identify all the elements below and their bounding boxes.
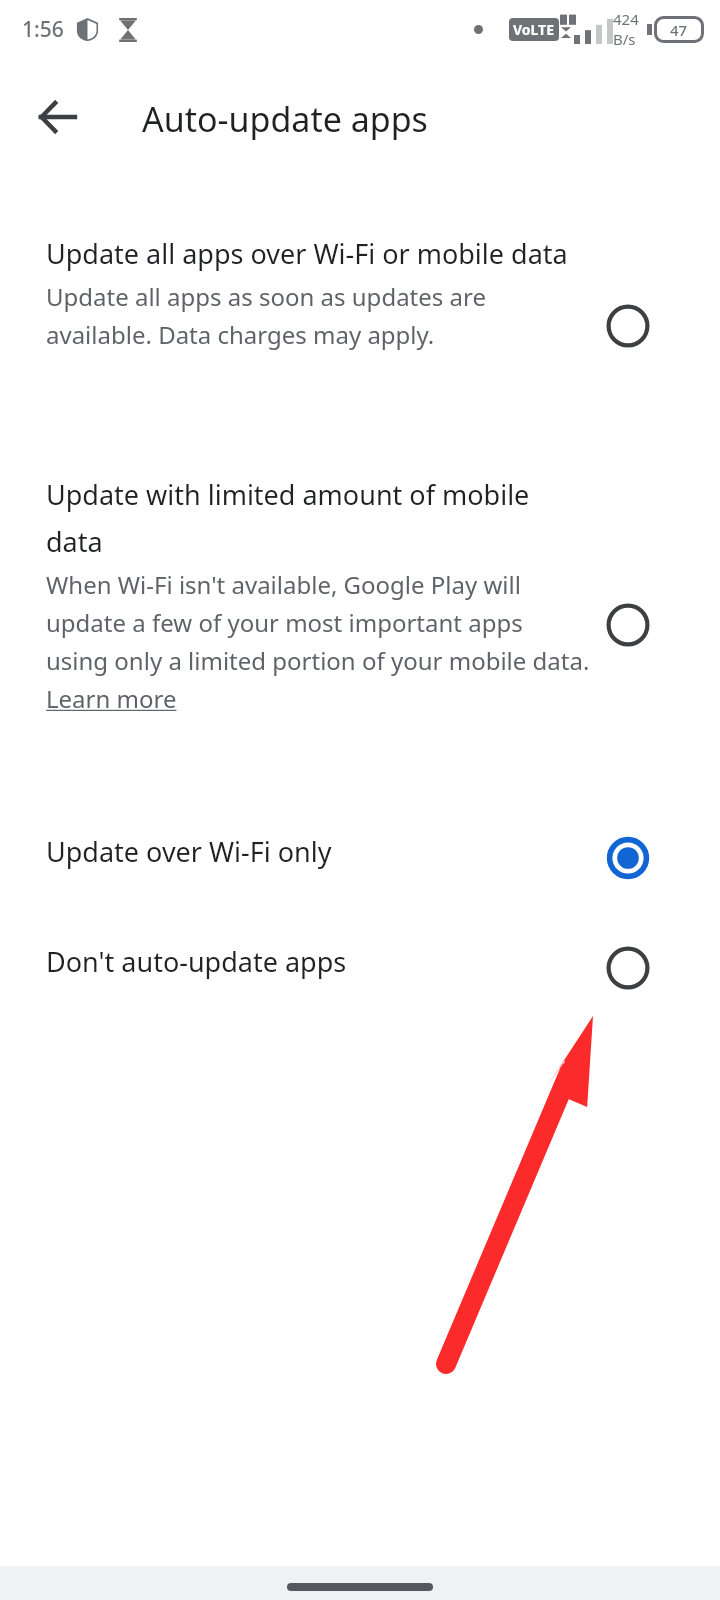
button[interactable]: Update all apps over Wi-Fi or mobile dat…	[598, 296, 658, 356]
button[interactable]	[0, 222, 720, 422]
staticText: 1:56	[22, 15, 64, 44]
staticText: Don't auto-update apps	[46, 943, 347, 980]
button[interactable]: Update with limited amount of mobile dat…	[598, 595, 658, 655]
button[interactable]: Navigate up	[24, 84, 90, 150]
button[interactable]	[0, 918, 720, 1018]
staticText: When Wi-Fi isn't available, Google Play …	[46, 568, 590, 715]
staticText: Update over Wi-Fi only	[46, 833, 332, 870]
button[interactable]	[0, 808, 720, 908]
button[interactable]: Don't auto-update apps	[598, 938, 658, 998]
staticText: 47	[670, 20, 688, 40]
staticText: Update with limited amount of mobile dat…	[46, 476, 590, 560]
staticText: B/s	[613, 29, 636, 49]
staticText: 424	[613, 9, 639, 29]
staticText: Auto-update apps	[142, 96, 428, 142]
button[interactable]: Update over Wi-Fi only	[598, 828, 658, 888]
staticText: Update all apps as soon as updates are a…	[46, 280, 590, 351]
staticText: Update all apps over Wi-Fi or mobile dat…	[46, 235, 568, 272]
button[interactable]	[0, 462, 720, 792]
staticText: VoLTE	[513, 20, 555, 39]
